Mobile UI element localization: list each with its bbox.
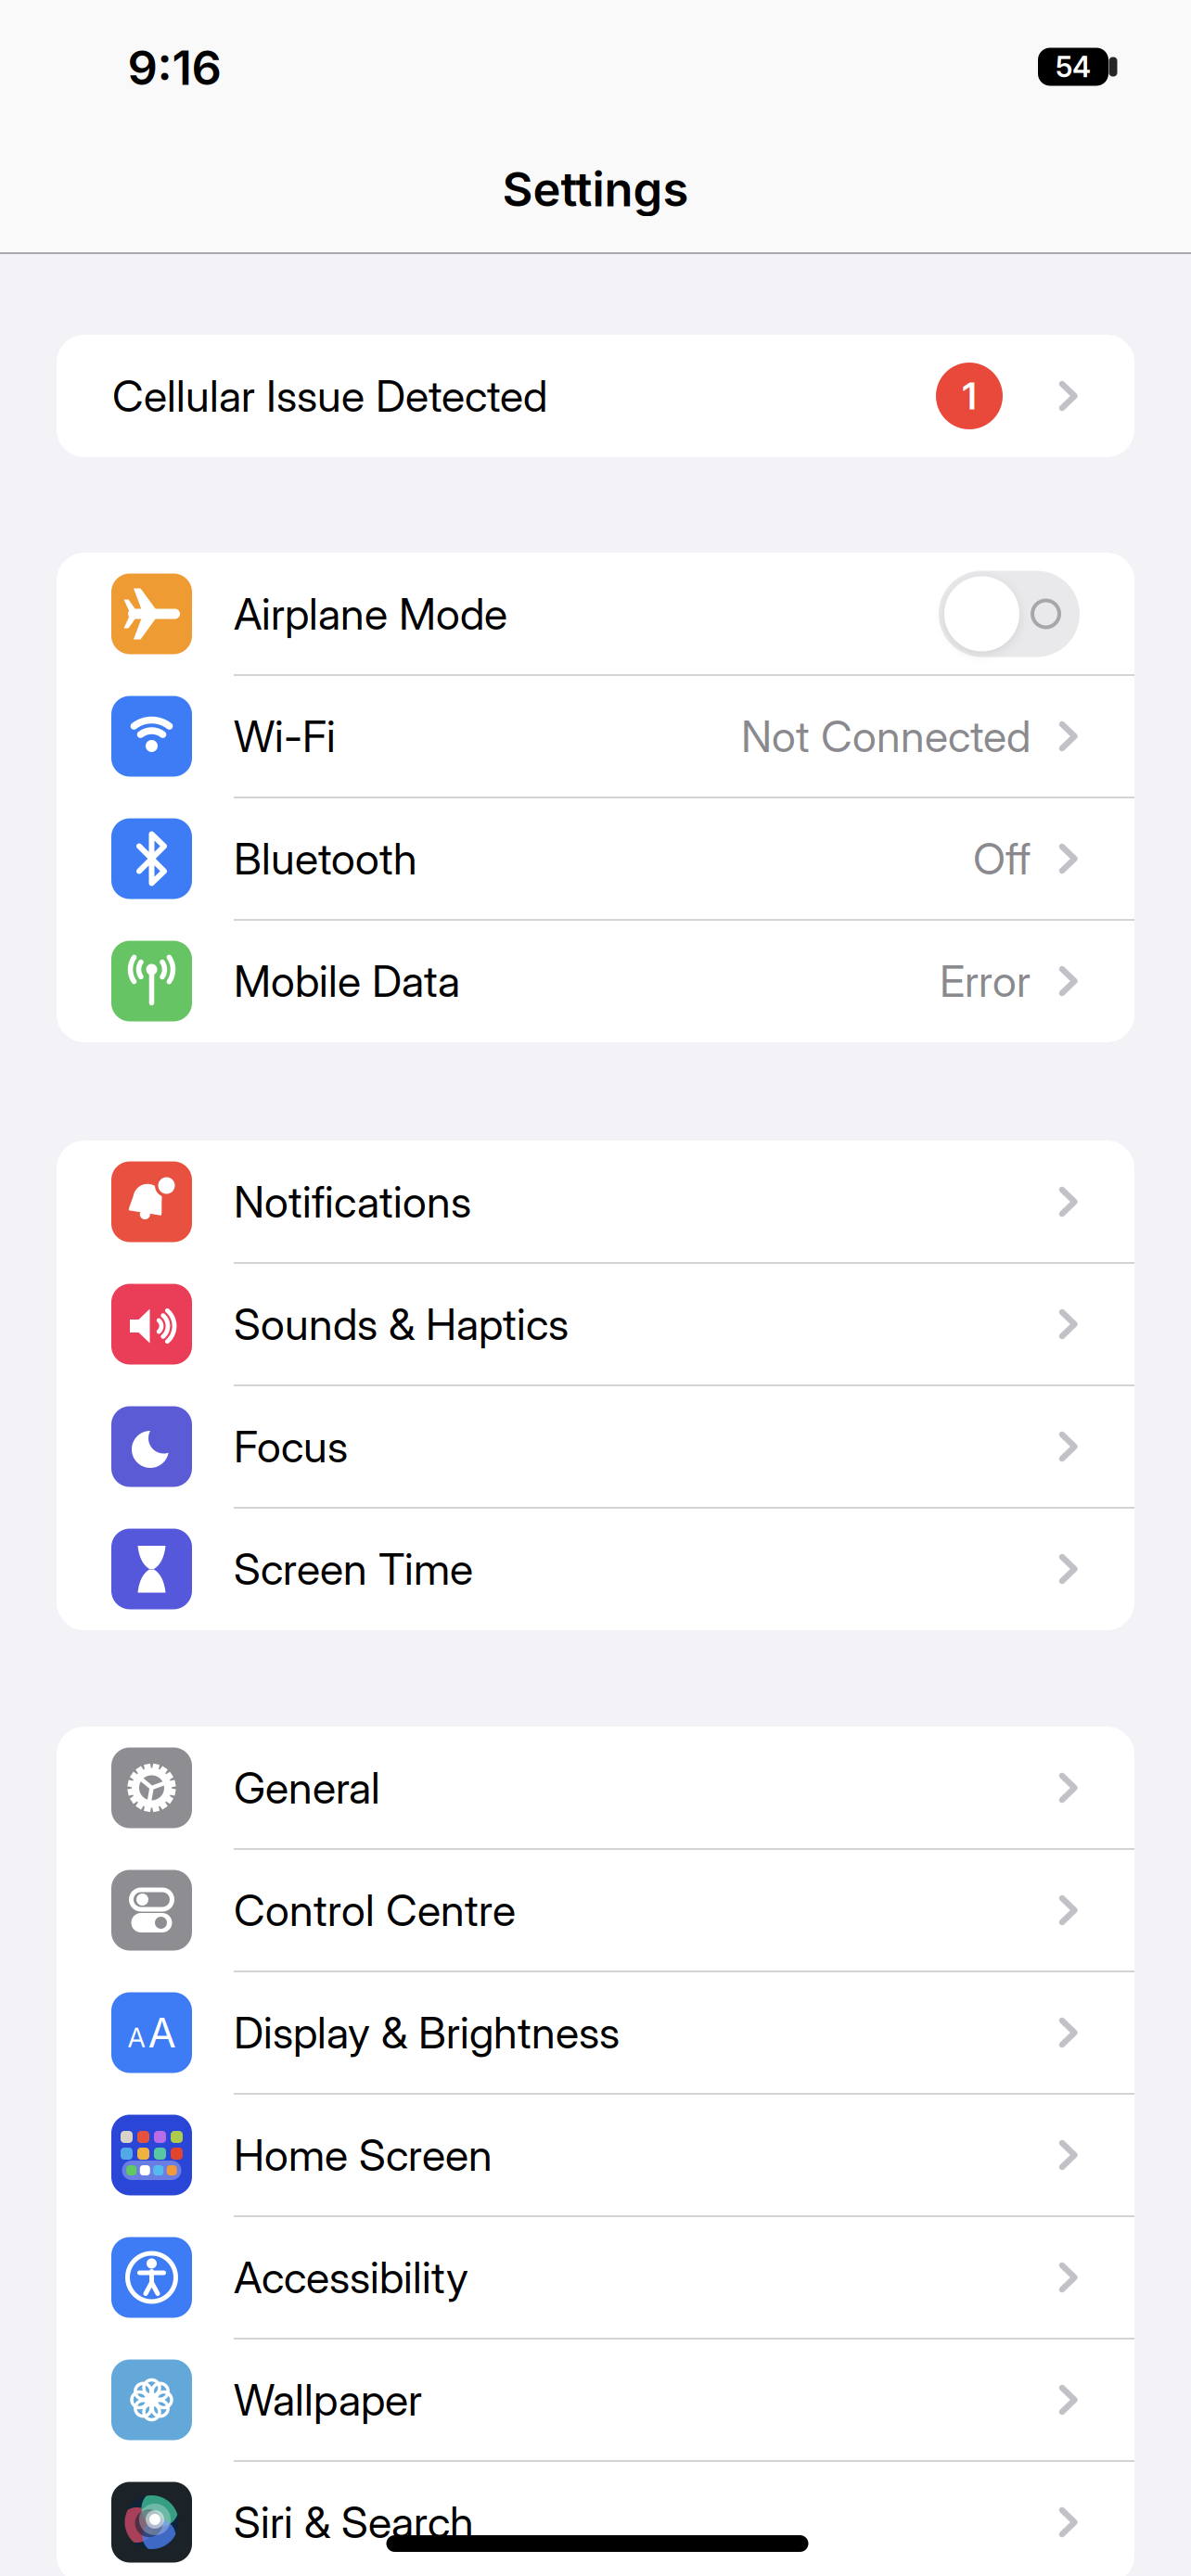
button[interactable]: Mobile Data xyxy=(57,920,1134,1042)
button[interactable]: Accessibility xyxy=(57,2216,1134,2339)
staticText: Home Screen xyxy=(234,2129,493,2181)
staticText: 54 xyxy=(1056,50,1091,84)
staticText: Error xyxy=(940,955,1031,1007)
staticText: Settings xyxy=(502,161,689,218)
button[interactable]: Sounds & Haptics xyxy=(57,1263,1134,1385)
staticText: 9:16 xyxy=(128,39,221,96)
button[interactable]: Home Screen xyxy=(57,2094,1134,2216)
button[interactable]: Bluetooth xyxy=(57,797,1134,920)
button[interactable]: Focus xyxy=(57,1385,1134,1508)
button[interactable]: A xyxy=(57,1971,1134,2094)
staticText: Sounds & Haptics xyxy=(234,1298,569,1350)
button[interactable]: Wallpaper xyxy=(57,2339,1134,2461)
staticText: 1 xyxy=(962,374,976,418)
staticText: Cellular Issue Detected xyxy=(112,370,547,422)
staticText: Display & Brightness xyxy=(234,2006,620,2059)
staticText: Wi-Fi xyxy=(234,710,336,763)
button[interactable]: Screen Time xyxy=(57,1508,1134,1630)
staticText: Bluetooth xyxy=(234,833,417,885)
staticText: Airplane Mode xyxy=(234,588,507,640)
staticText: Wallpaper xyxy=(234,2374,422,2426)
button[interactable]: Cellular Issue Detected xyxy=(57,335,1134,457)
button[interactable]: General xyxy=(57,1727,1134,1849)
staticText: Off xyxy=(973,833,1031,885)
staticText: Mobile Data xyxy=(234,955,460,1007)
staticText: General xyxy=(234,1762,380,1814)
staticText: Screen Time xyxy=(234,1543,473,1595)
staticText: Not Connected xyxy=(741,710,1031,763)
button[interactable]: Control Centre xyxy=(57,1849,1134,1971)
button[interactable]: Siri & Search xyxy=(57,2461,1134,2576)
staticText: Focus xyxy=(234,1420,348,1473)
staticText: A xyxy=(128,2021,145,2054)
button[interactable]: Notifications xyxy=(57,1141,1134,1263)
button[interactable]: Wi-Fi xyxy=(57,675,1134,797)
staticText: A xyxy=(148,2008,176,2057)
button[interactable]: Airplane Mode xyxy=(939,571,1080,657)
staticText: Siri & Search xyxy=(234,2496,474,2548)
staticText: Notifications xyxy=(234,1176,471,1228)
staticText: Control Centre xyxy=(234,1884,516,1936)
staticText: Accessibility xyxy=(234,2251,468,2304)
